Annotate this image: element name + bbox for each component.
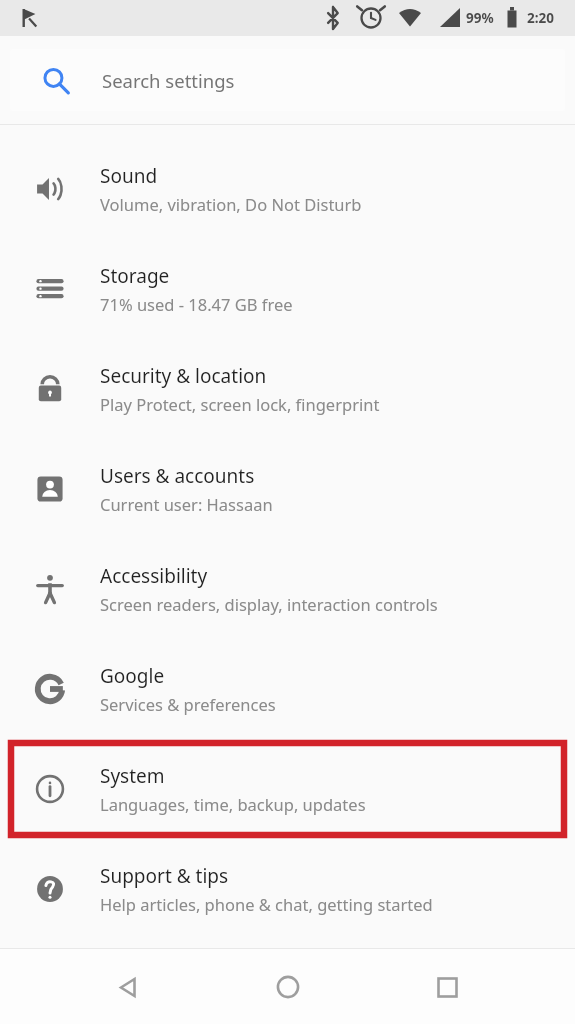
staticText: Users & accounts (100, 463, 255, 489)
button[interactable]: System (0, 739, 575, 839)
staticText: Sound (100, 163, 158, 189)
staticText: Volume, vibration, Do Not Disturb (100, 193, 362, 215)
button[interactable]: Support & tips (0, 839, 575, 939)
staticText: 99% (466, 9, 494, 27)
staticText: Play Protect, screen lock, fingerprint (100, 393, 380, 415)
staticText: Screen readers, display, interaction con… (100, 593, 438, 615)
staticText: System (100, 763, 165, 789)
staticText: Accessibility (100, 563, 208, 589)
button[interactable]: Google (0, 639, 575, 739)
button[interactable]: Accessibility (0, 539, 575, 639)
staticText: Services & preferences (100, 693, 276, 715)
button[interactable]: Home (260, 959, 316, 1015)
staticText: Help articles, phone & chat, getting sta… (100, 893, 433, 915)
staticText: Search settings (102, 68, 235, 93)
button[interactable]: Storage (0, 239, 575, 339)
button[interactable]: Sound (0, 139, 575, 239)
button[interactable]: Search settings (10, 49, 565, 111)
button[interactable]: Recent apps (419, 959, 475, 1015)
staticText: Support & tips (100, 863, 229, 889)
staticText: Storage (100, 263, 170, 289)
button[interactable]: Back (100, 959, 156, 1015)
staticText: 2:20 (527, 9, 554, 27)
staticText: 71% used - 18.47 GB free (100, 293, 293, 315)
button[interactable]: Users & accounts (0, 439, 575, 539)
staticText: Google (100, 663, 165, 689)
staticText: Languages, time, backup, updates (100, 793, 366, 815)
staticText: Security & location (100, 363, 267, 389)
button[interactable]: Security & location (0, 339, 575, 439)
staticText: Current user: Hassaan (100, 493, 273, 515)
